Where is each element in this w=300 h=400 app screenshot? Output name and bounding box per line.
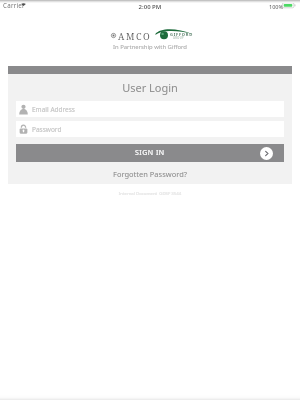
- staticText: Password: [32, 125, 62, 134]
- staticText: Email Address: [32, 105, 75, 114]
- staticText: In Partnership with Gifford: [0, 43, 300, 51]
- staticText: Internal Document GDSF 3544: [0, 190, 300, 196]
- button[interactable]: Password: [16, 121, 284, 137]
- staticText: User Login: [8, 80, 292, 95]
- staticText: 100%: [269, 3, 284, 10]
- staticText: 2:00 PM: [0, 3, 300, 11]
- staticText: AMCO: [118, 30, 152, 42]
- other: Sign in: [260, 147, 273, 160]
- button[interactable]: SIGN IN: [16, 144, 284, 162]
- staticText: Carrier: [3, 1, 25, 9]
- button[interactable]: Email Address: [16, 101, 284, 117]
- staticText: SIGN IN: [135, 148, 165, 158]
- button[interactable]: Forgotten Password?: [8, 169, 292, 179]
- staticText: GIFFORD: [170, 32, 193, 37]
- staticText: GROUP: [173, 36, 184, 40]
